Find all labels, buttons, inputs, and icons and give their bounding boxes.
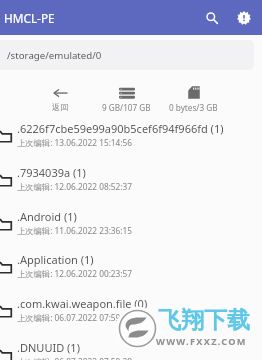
- other: SD card: [188, 86, 200, 99]
- staticText: 0 bytes/3 GB: [169, 102, 218, 113]
- staticText: /storage/emulated/0: [7, 49, 102, 62]
- staticText: .com.kwai.weapon.file (0): [17, 296, 148, 311]
- button[interactable]: Search: [199, 5, 224, 30]
- other: Back: [53, 87, 68, 98]
- staticText: .DNUUID (1): [17, 340, 80, 355]
- staticText: .7934039a (1): [17, 165, 86, 180]
- button[interactable]: .Android (1): [0, 200, 262, 244]
- button[interactable]: Internal storage: [93, 75, 159, 114]
- button[interactable]: About: [231, 5, 256, 30]
- staticText: .Android (1): [17, 209, 77, 224]
- staticText: 飞翔下载: [158, 306, 250, 335]
- button[interactable]: SD card: [160, 75, 226, 114]
- staticText: 上次编辑: 06.07.2022 07:59:29: [17, 312, 133, 323]
- staticText: .6226f7cbe59e99a90b5cef6f94f966fd (1): [17, 121, 224, 136]
- button[interactable]: .Application (1): [0, 243, 262, 287]
- staticText: 上次编辑: 12.06.2022 00:23:57: [17, 268, 133, 279]
- staticText: WWW.FXXZ.COM: [156, 335, 247, 348]
- staticText: 上次编辑: 13.06.2022 15:14:56: [17, 137, 133, 148]
- staticText: 上次编辑: 12.06.2022 08:52:37: [17, 181, 133, 192]
- button[interactable]: /storage/emulated/0: [0, 40, 254, 70]
- staticText: 上次编辑: 06.07.2022 07:59:29: [17, 356, 133, 360]
- staticText: HMCL-PE: [4, 10, 55, 26]
- staticText: 返回: [52, 102, 69, 112]
- button[interactable]: .7934039a (1): [0, 156, 262, 200]
- staticText: 上次编辑: 11.06.2022 23:36:15: [17, 225, 133, 236]
- staticText: 9 GB/107 GB: [102, 102, 151, 113]
- other: Internal storage: [119, 87, 135, 99]
- button[interactable]: .DNUUID (1): [0, 331, 262, 360]
- staticText: .Application (1): [17, 252, 94, 267]
- button[interactable]: .com.kwai.weapon.file (0): [0, 287, 262, 331]
- button[interactable]: .6226f7cbe59e99a90b5cef6f94f966fd (1): [0, 112, 262, 156]
- button[interactable]: Back: [27, 75, 93, 114]
